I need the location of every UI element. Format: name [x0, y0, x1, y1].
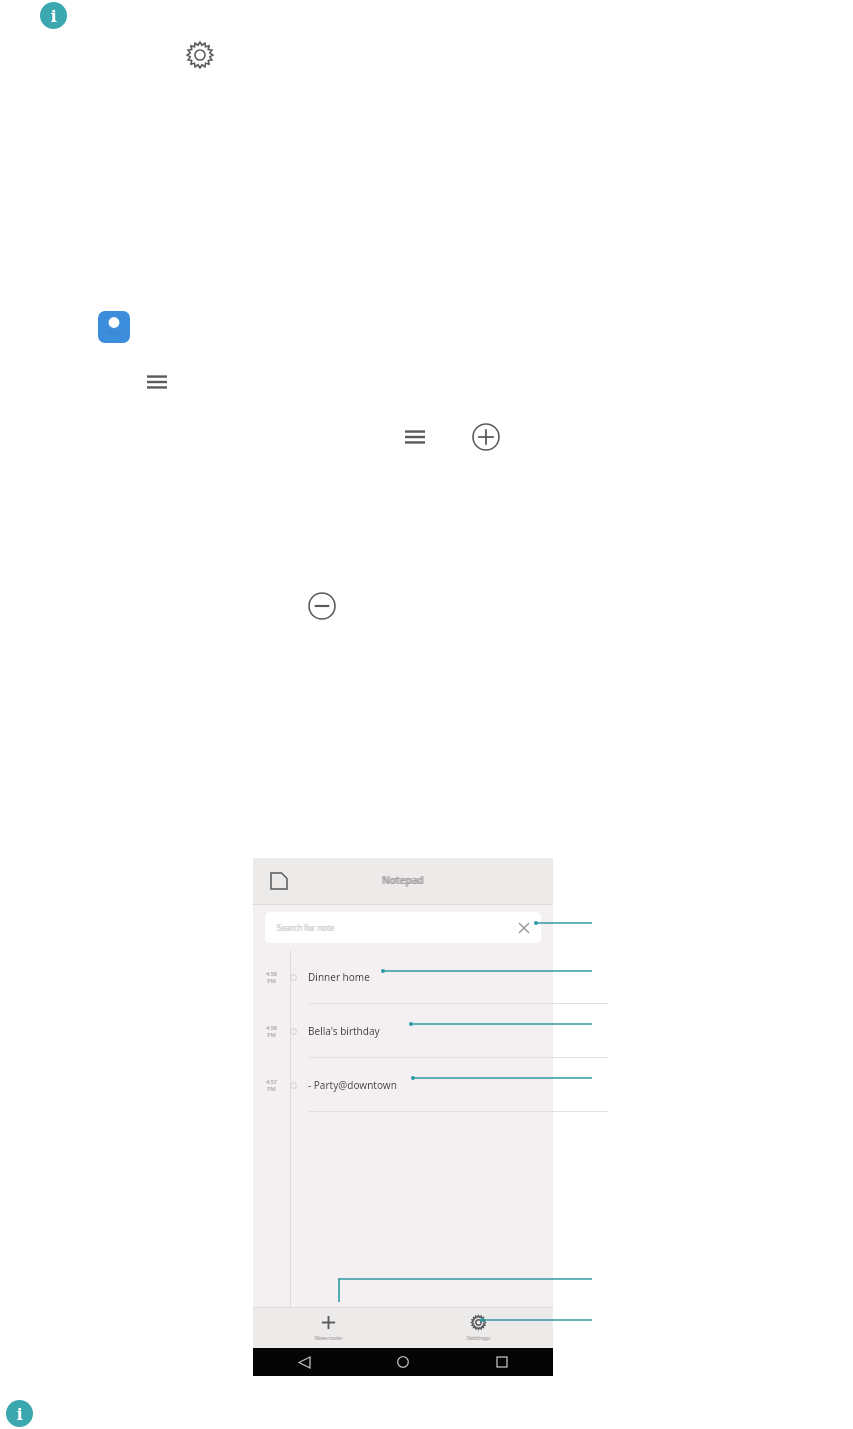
staticText: PM	[267, 1085, 276, 1092]
button[interactable]: 4:58	[253, 950, 553, 1004]
staticText: Notepad	[383, 873, 425, 887]
staticText: Settings	[467, 1334, 490, 1342]
button[interactable]: Clear	[515, 919, 533, 937]
staticText: PM	[267, 1031, 276, 1038]
button[interactable]: Settings	[403, 1308, 553, 1342]
staticText: 4:57	[266, 1078, 277, 1085]
button[interactable]: 4:57	[253, 1058, 553, 1112]
staticText: Dinner home	[308, 970, 370, 984]
button[interactable]: New note	[253, 1308, 403, 1342]
button[interactable]: Back	[293, 1351, 315, 1373]
button[interactable]: Information	[40, 2, 67, 29]
staticText: PM	[267, 977, 276, 984]
button[interactable]: Weather app	[98, 311, 130, 343]
staticText: Bella's birthday	[308, 1024, 380, 1038]
button[interactable]: Settings	[184, 39, 215, 70]
staticText: Search for note	[277, 922, 335, 933]
button[interactable]: Menu	[400, 422, 430, 452]
staticText: Search for note	[278, 922, 336, 933]
button[interactable]: 4:58	[253, 1004, 553, 1058]
staticText: New note	[314, 1334, 341, 1342]
staticText: 4:58	[266, 970, 277, 977]
staticText: New note	[315, 1334, 342, 1342]
staticText: Notepad	[382, 873, 424, 887]
staticText: New note	[316, 1334, 343, 1342]
button[interactable]: Search for note	[265, 912, 541, 943]
staticText: 4:58	[266, 1024, 277, 1031]
button[interactable]: Add	[471, 422, 501, 452]
staticText: Settings	[468, 1334, 491, 1342]
button[interactable]: Remove	[307, 591, 337, 621]
button[interactable]: Recents	[491, 1351, 513, 1373]
button[interactable]: Home	[392, 1351, 414, 1373]
button[interactable]: Menu	[142, 367, 172, 397]
button[interactable]: Information	[6, 1400, 33, 1427]
staticText: i	[51, 5, 57, 27]
staticText: Search for note	[276, 922, 334, 933]
staticText: i	[17, 1403, 23, 1425]
staticText: Notepad	[381, 873, 423, 887]
staticText: Settings	[466, 1334, 489, 1342]
staticText: - Party@downtown	[308, 1078, 397, 1092]
button[interactable]: Notes	[267, 869, 291, 893]
